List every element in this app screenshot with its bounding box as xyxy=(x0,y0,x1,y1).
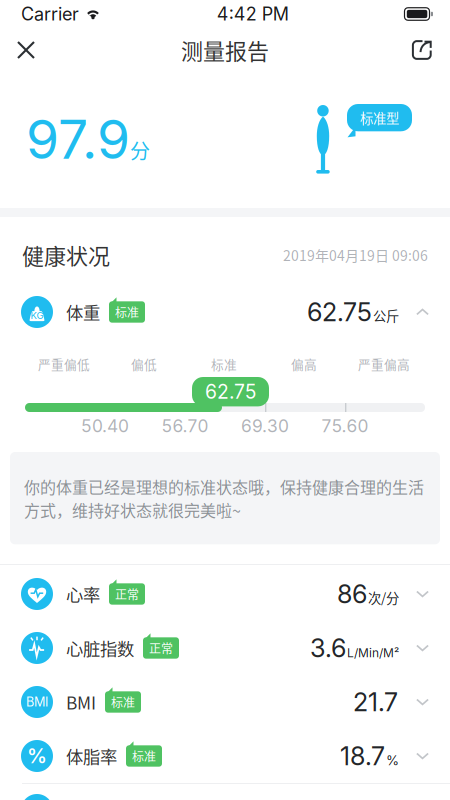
staticText: 97.9 xyxy=(26,107,130,171)
staticText: % xyxy=(27,744,47,768)
staticText: 标准 xyxy=(132,747,156,765)
staticText: 你的体重已经是理想的标准状态哦，保持健康合理的生活方式，维持好状态就很完美啦~ xyxy=(24,475,424,521)
staticText: 体脂率 xyxy=(66,743,117,769)
staticText: L/Min/M² xyxy=(347,646,399,660)
staticText: 50.40 xyxy=(81,415,129,436)
staticText: 偏高 xyxy=(291,355,317,373)
button[interactable]: 心脏指数 xyxy=(0,621,450,675)
staticText: 次/分 xyxy=(368,588,399,607)
staticText: 62.75 xyxy=(205,380,256,403)
staticText: 公斤 xyxy=(373,306,399,325)
staticText: 75.60 xyxy=(321,415,368,436)
button[interactable]: % xyxy=(0,729,450,783)
staticText: 56.70 xyxy=(161,415,208,436)
button[interactable]: 心率 xyxy=(0,567,450,621)
staticText: BMI xyxy=(26,694,48,710)
staticText: 18.7 xyxy=(340,741,385,771)
staticText: 测量报告 xyxy=(181,34,269,66)
staticText: 心脏指数 xyxy=(66,635,134,661)
staticText: 标准型 xyxy=(360,108,399,127)
button[interactable]: Close xyxy=(4,28,48,72)
staticText: 分 xyxy=(130,135,150,164)
staticText: 2019年04月19日 09:06 xyxy=(283,245,428,265)
staticText: 86 xyxy=(337,579,367,609)
staticText: 69.30 xyxy=(241,415,289,436)
staticText: KG xyxy=(30,310,43,321)
staticText: Carrier xyxy=(21,3,79,25)
button[interactable]: KG xyxy=(0,285,450,339)
staticText: 偏低 xyxy=(131,355,157,373)
staticText: 标准 xyxy=(111,693,135,711)
staticText: BMI xyxy=(66,689,96,715)
staticText: 严重偏低 xyxy=(38,355,90,373)
staticText: 3.6 xyxy=(310,633,346,663)
button[interactable]: BMI xyxy=(0,675,450,729)
staticText: 62.75 xyxy=(307,297,372,327)
staticText: 体重 xyxy=(66,299,100,325)
staticText: 标准 xyxy=(115,303,139,321)
staticText: 心率 xyxy=(66,581,100,607)
staticText: % xyxy=(386,752,399,768)
staticText: 正常 xyxy=(149,639,173,657)
staticText: 严重偏高 xyxy=(358,355,410,373)
staticText: 21.7 xyxy=(353,687,398,717)
staticText: 标准 xyxy=(211,355,237,373)
staticText: 正常 xyxy=(115,585,139,603)
staticText: 4:42 PM xyxy=(217,3,289,25)
staticText: 健康状况 xyxy=(22,239,110,271)
button[interactable]: Share xyxy=(400,28,444,72)
